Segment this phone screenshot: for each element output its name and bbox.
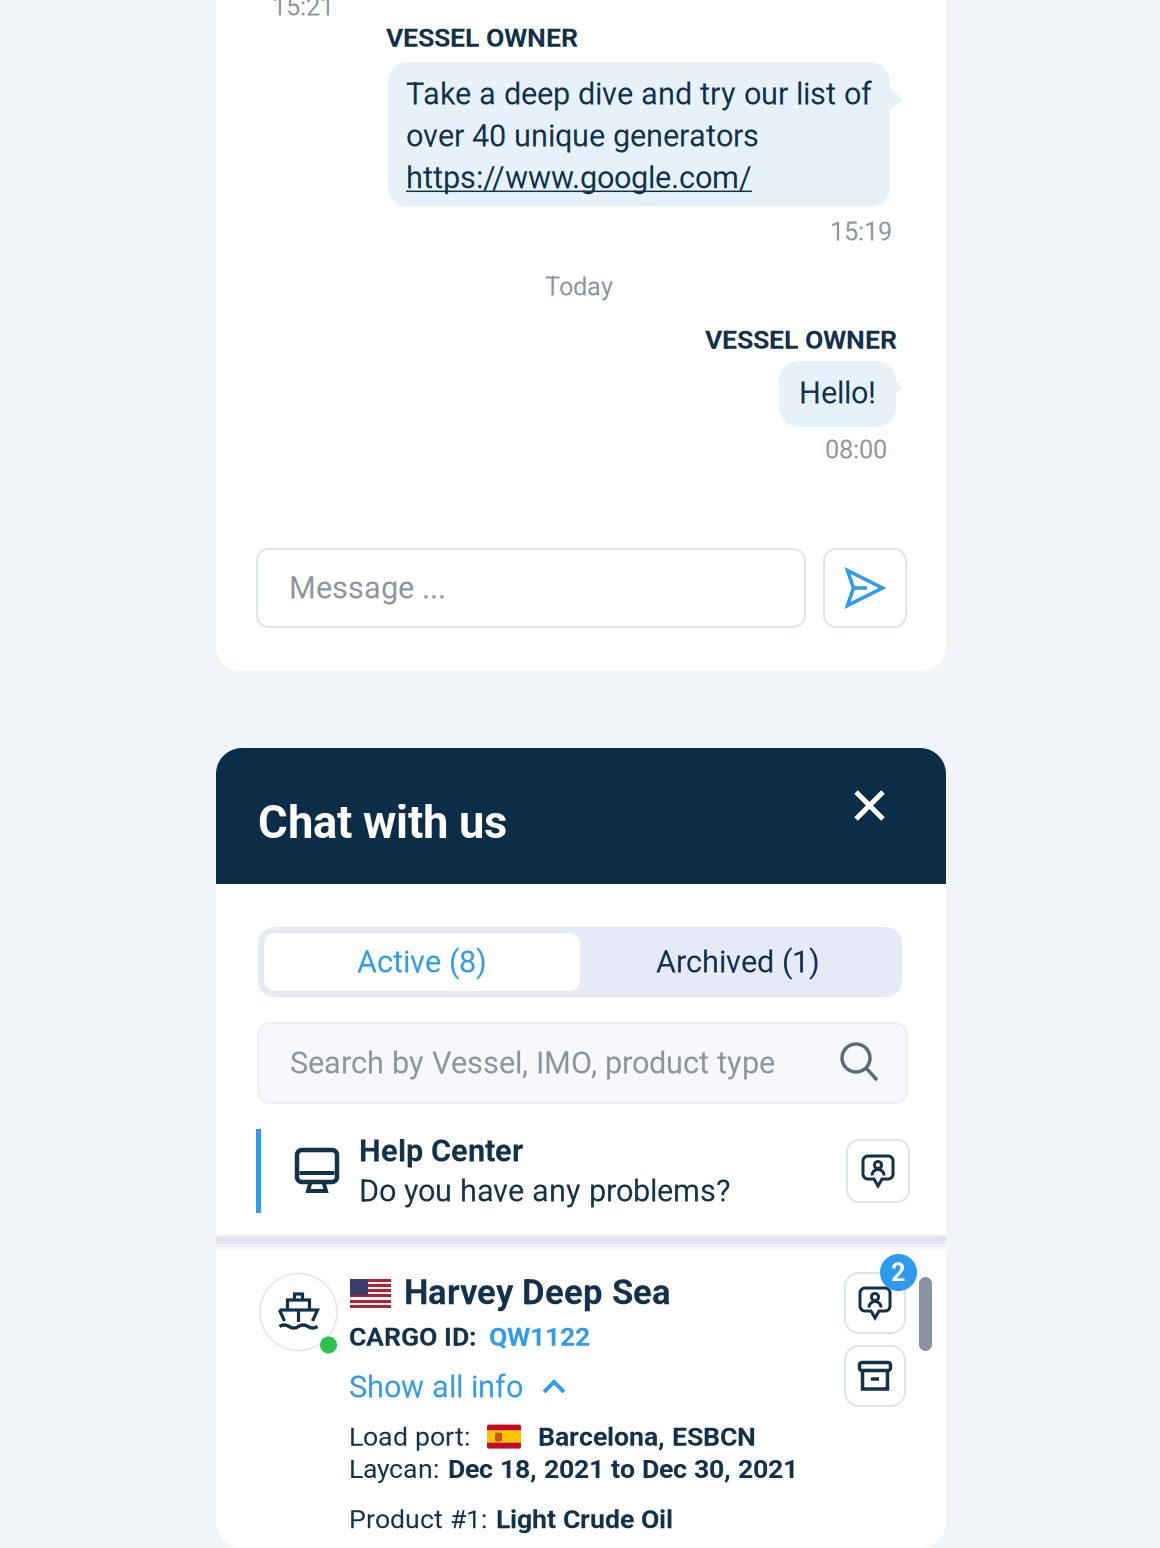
staticText: Dec 18, 2021 to Dec 30, 2021 [448,1453,798,1485]
staticText: Today [545,272,613,302]
staticText: 08:00 [825,435,887,465]
staticText: over 40 unique generators [406,118,759,154]
button[interactable]: Active (8) [264,933,580,991]
staticText: Laycan: [349,1453,439,1485]
staticText: VESSEL OWNER [386,22,578,53]
button[interactable]: Archived (1) [580,933,896,991]
staticText: Load port: [349,1421,470,1452]
button[interactable]: Help Center [256,1126,946,1216]
staticText: CARGO ID: [349,1321,477,1352]
staticText: Chat with us [258,796,507,849]
staticText: Show all info [349,1369,523,1405]
button[interactable]: Show all info [349,1369,566,1405]
staticText: 15:21 [272,0,334,22]
button[interactable]: Close [853,789,886,822]
button[interactable]: Archive [845,1346,905,1406]
staticText: https://www.google.com/ [406,160,752,196]
staticText: Product #1: [349,1503,487,1535]
staticText: Do you have any problems? [359,1173,730,1209]
staticText: Message ... [289,570,446,606]
button[interactable]: Messages [845,1273,905,1333]
staticText: Active (8) [357,944,487,980]
staticText: Help Center [359,1133,523,1169]
staticText: Light Crude Oil [496,1503,673,1535]
staticText: Archived (1) [656,944,820,980]
staticText: Hello! [799,375,876,411]
staticText: VESSEL OWNER [705,324,897,355]
staticText: Harvey Deep Sea [404,1272,671,1313]
button[interactable]: Send [824,549,906,627]
staticText: 15:19 [830,217,892,247]
staticText: Search by Vessel, IMO, product type [290,1045,775,1081]
staticText: QW1122 [489,1321,590,1352]
staticText: Take a deep dive and try our list of [406,76,872,112]
staticText: 2 [891,1258,906,1287]
staticText: Barcelona, ESBCN [538,1421,756,1452]
button[interactable]: Message ... [257,549,805,627]
